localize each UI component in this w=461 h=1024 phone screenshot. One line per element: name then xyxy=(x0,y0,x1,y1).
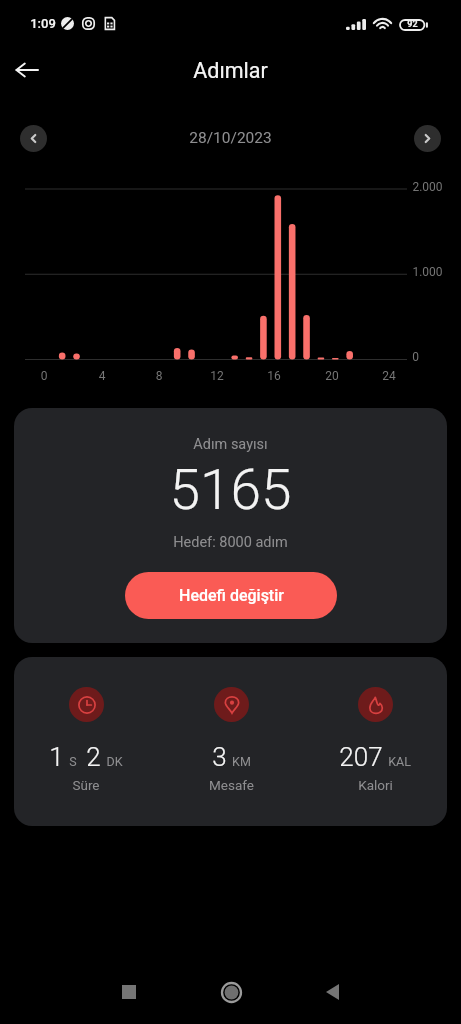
button[interactable]: Previous day xyxy=(20,125,47,152)
button[interactable]: 1 xyxy=(14,657,158,793)
staticText: 16 xyxy=(262,369,286,383)
staticText: KAL xyxy=(388,754,411,769)
button[interactable]: 3 xyxy=(159,657,303,793)
staticText: Hedef: 8000 adım xyxy=(173,534,288,551)
staticText: 24 xyxy=(377,369,401,383)
staticText: 20 xyxy=(320,369,344,383)
staticText: S xyxy=(69,754,77,769)
staticText: 4 xyxy=(90,369,114,383)
button[interactable]: Hedefi değiştir xyxy=(125,572,337,619)
button[interactable]: Back xyxy=(3,46,51,94)
staticText: 0 xyxy=(412,350,419,364)
staticText: 207 xyxy=(339,742,383,772)
button[interactable]: Back xyxy=(308,968,356,1016)
button[interactable]: Next day xyxy=(414,125,441,152)
staticText: Süre xyxy=(72,777,100,793)
staticText: Adımlar xyxy=(193,58,268,83)
staticText: KM xyxy=(232,754,251,769)
staticText: 1 xyxy=(49,742,64,772)
staticText: 3 xyxy=(212,742,227,772)
button[interactable]: Home xyxy=(207,968,255,1016)
staticText: 5165 xyxy=(169,458,292,522)
staticText: 8 xyxy=(147,369,171,383)
staticText: DK xyxy=(106,754,123,769)
staticText: 0 xyxy=(32,369,56,383)
button[interactable]: 207 xyxy=(303,657,447,793)
staticText: 92 xyxy=(407,19,418,30)
staticText: 2 xyxy=(86,742,101,772)
staticText: Hedefi değiştir xyxy=(179,586,284,605)
staticText: 2.000 xyxy=(412,180,443,194)
staticText: Adım sayısı xyxy=(193,436,268,453)
staticText: 12 xyxy=(205,369,229,383)
button[interactable]: Recents xyxy=(105,968,153,1016)
staticText: 1.000 xyxy=(412,265,443,279)
staticText: Kalori xyxy=(358,777,393,793)
staticText: 1:09 xyxy=(30,16,56,31)
staticText: 28/10/2023 xyxy=(189,129,272,147)
staticText: Mesafe xyxy=(209,777,254,793)
